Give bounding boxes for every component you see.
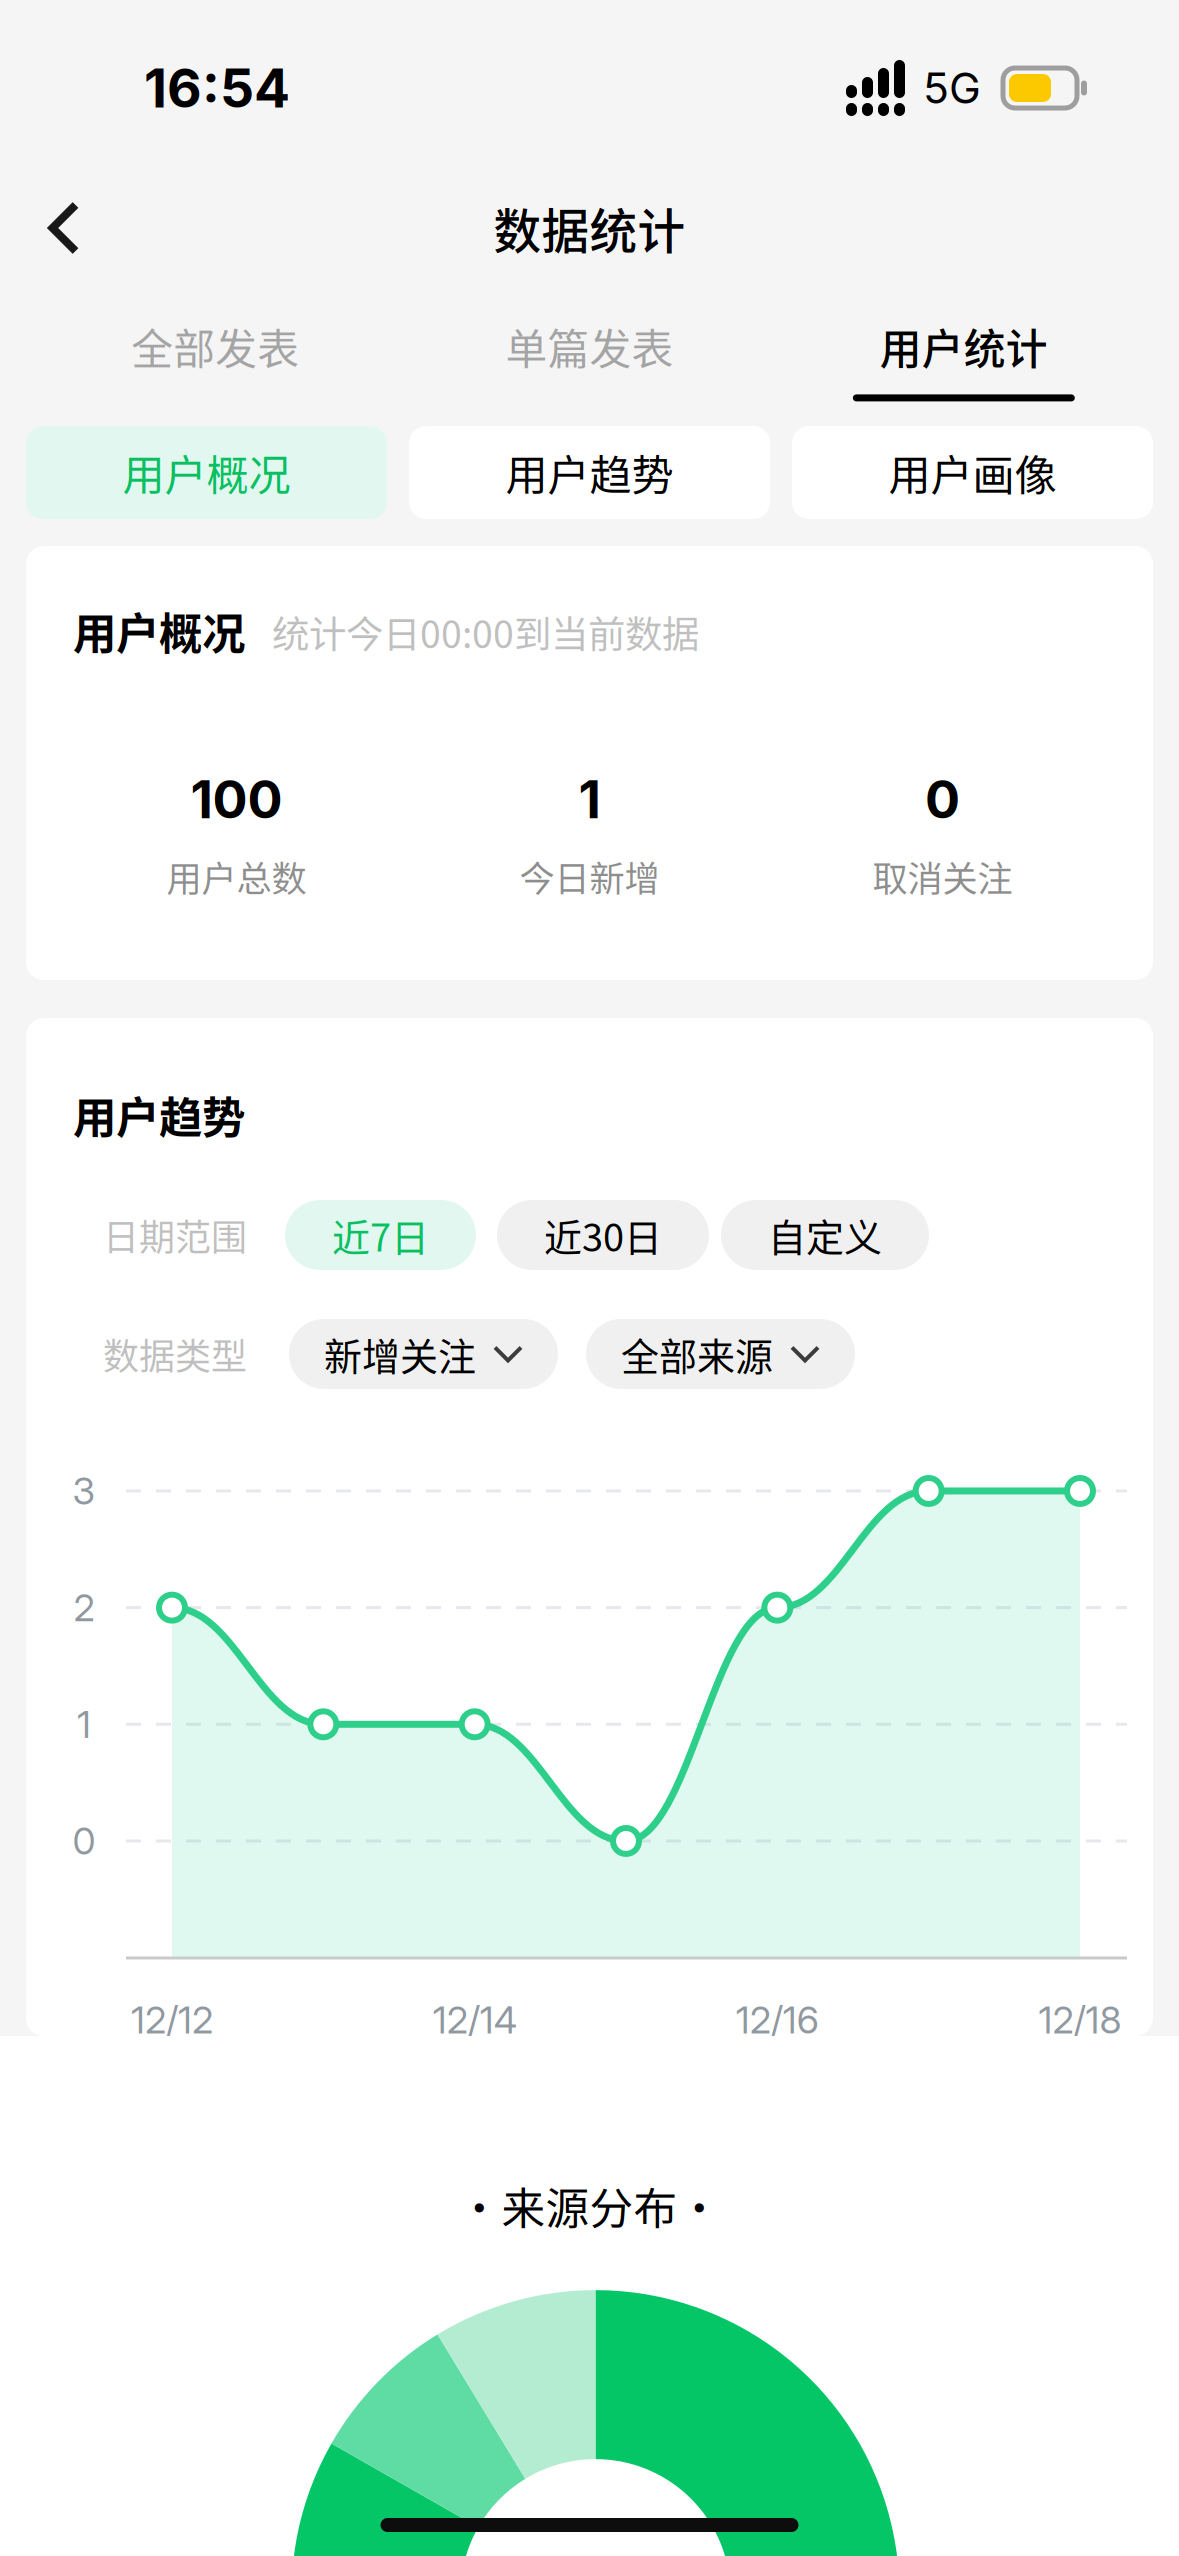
staticText: ・来源分布・	[457, 2174, 721, 2237]
staticText: 3	[72, 1468, 95, 1514]
staticText: 12/16	[736, 1997, 819, 2043]
button[interactable]: 自定义	[721, 1200, 929, 1270]
button[interactable]: 全部来源	[586, 1319, 855, 1389]
button[interactable]: 单篇发表	[402, 280, 777, 412]
staticText: 用户概况	[73, 599, 245, 662]
staticText: 100	[190, 768, 282, 831]
staticText: 2	[73, 1585, 94, 1630]
staticText: 近30日	[544, 1207, 662, 1262]
staticText: 数据类型	[103, 1328, 247, 1380]
staticText: 0	[72, 1818, 95, 1864]
staticText: 12/14	[433, 1997, 517, 2043]
staticText: 12/18	[1038, 1997, 1121, 2043]
staticText: 数据统计	[493, 193, 685, 262]
staticText: 近7日	[332, 1207, 429, 1262]
staticText: 取消关注	[872, 851, 1012, 902]
staticText: 用户概况	[122, 442, 290, 503]
button[interactable]: 全部发表	[28, 280, 402, 412]
staticText: 1	[77, 1702, 91, 1747]
staticText: 5G	[923, 62, 981, 114]
staticText: 用户画像	[888, 442, 1056, 503]
button[interactable]: 用户统计	[777, 280, 1151, 412]
staticText: 1	[578, 768, 600, 831]
button[interactable]: 用户概况	[26, 426, 387, 519]
staticText: 日期范围	[103, 1209, 247, 1261]
button[interactable]: 用户趋势	[409, 426, 770, 519]
staticText: 单篇发表	[505, 316, 673, 376]
button[interactable]: 返回	[16, 176, 112, 280]
staticText: 自定义	[768, 1207, 882, 1262]
staticText: 12/12	[131, 1997, 213, 2043]
button[interactable]: 用户画像	[792, 426, 1153, 519]
staticText: 新增关注	[324, 1326, 476, 1381]
button[interactable]: 新增关注	[289, 1319, 558, 1389]
button[interactable]: 近7日	[285, 1200, 476, 1270]
staticText: 用户统计	[880, 316, 1048, 376]
button[interactable]: 近30日	[497, 1200, 709, 1270]
staticText: 统计今日00:00到当前数据	[272, 605, 699, 659]
staticText: 用户趋势	[73, 1083, 245, 1146]
staticText: 0	[925, 768, 960, 831]
staticText: 用户总数	[166, 851, 306, 902]
staticText: 今日新增	[519, 851, 659, 902]
staticText: 16:54	[144, 56, 290, 120]
staticText: 用户趋势	[505, 442, 673, 503]
staticText: 全部来源	[621, 1326, 773, 1381]
staticText: 全部发表	[131, 316, 299, 376]
